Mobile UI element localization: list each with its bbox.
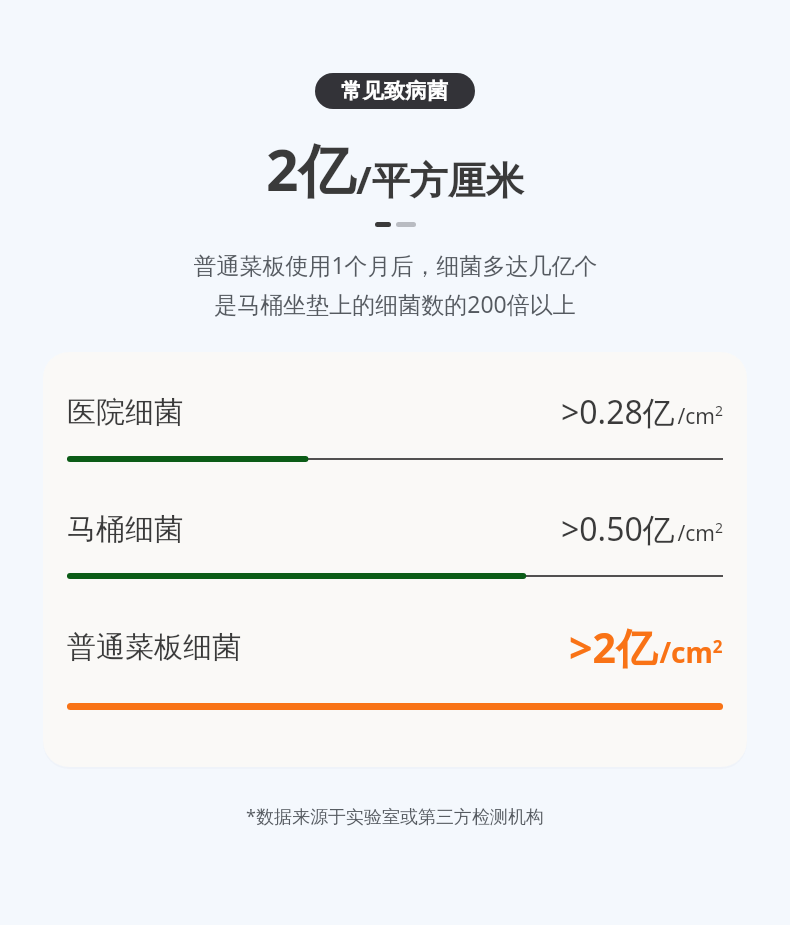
staticText: 普通菜板使用1个月后，细菌多达几亿个 [193,249,598,280]
button[interactable]: 医院细菌 [67,390,723,462]
staticText: >0.28亿 /cm2 [561,390,723,434]
staticText: 常见致病菌 [341,78,449,104]
staticText: 2亿 [266,130,356,208]
staticText: *数据来源于实验室或第三方检测机构 [246,804,544,829]
staticText: 医院细菌 [67,394,183,431]
staticText: 马桶细菌 [67,511,183,548]
staticText: >0.50亿 /cm2 [561,507,723,551]
staticText: >2亿 /cm2 [569,619,723,675]
button[interactable]: 常见致病菌 [315,73,475,109]
staticText: 是马桶坐垫上的细菌数的200倍以上 [214,288,576,319]
button[interactable]: 普通菜板细菌 [67,619,723,710]
staticText: 普通菜板细菌 [67,629,241,666]
staticText: /平方厘米 [356,153,524,205]
button[interactable]: 马桶细菌 [67,507,723,579]
